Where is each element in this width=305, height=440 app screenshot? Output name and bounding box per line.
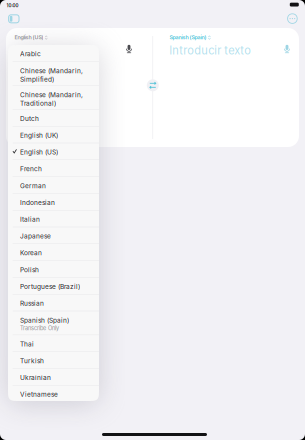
button[interactable]: Chinese (Mandarin, xyxy=(8,86,99,109)
staticText: Korean xyxy=(20,249,42,257)
button[interactable]: Turkish xyxy=(8,352,99,368)
staticText: Ukrainian xyxy=(20,374,51,382)
staticText: Traditional) xyxy=(20,99,56,107)
button[interactable]: Korean xyxy=(8,244,99,260)
staticText: Chinese (Mandarin, xyxy=(20,67,83,75)
button[interactable]: Polish xyxy=(8,261,99,277)
staticText: English (UK) xyxy=(20,131,58,139)
button[interactable]: German xyxy=(8,177,99,193)
staticText: Indonesian xyxy=(20,199,55,206)
staticText: Introducir texto xyxy=(169,44,251,57)
button[interactable]: Dictate English xyxy=(122,41,136,57)
staticText: Polish xyxy=(20,266,39,274)
staticText: Turkish xyxy=(20,357,44,365)
staticText: English (US) xyxy=(20,148,58,156)
staticText: Japanese xyxy=(20,232,51,240)
staticText: Spanish (Spain) xyxy=(170,34,207,41)
button[interactable]: Spanish (Spain) xyxy=(8,311,99,335)
button[interactable]: English (US) xyxy=(14,34,54,40)
staticText: English (US) xyxy=(14,34,43,41)
staticText: Spanish (Spain) xyxy=(20,316,69,324)
button[interactable]: Dictate Spanish xyxy=(280,41,294,57)
button[interactable]: Portuguese (Brazil) xyxy=(8,278,99,294)
staticText: Portuguese (Brazil) xyxy=(20,283,80,290)
staticText: 10:00 xyxy=(6,3,18,8)
button[interactable]: French xyxy=(8,160,99,176)
staticText: Transcribe Only xyxy=(20,325,59,332)
staticText: Simplified) xyxy=(20,75,54,83)
staticText: Enter text xyxy=(14,44,65,57)
staticText: Vietnamese xyxy=(20,390,58,398)
button[interactable]: Swap languages xyxy=(147,79,159,91)
button[interactable]: Ukrainian xyxy=(8,369,99,385)
staticText: Russian xyxy=(20,299,44,307)
button[interactable]: Arabic xyxy=(8,45,99,61)
staticText: Chinese (Mandarin, xyxy=(20,91,83,99)
staticText: French xyxy=(20,165,42,173)
button[interactable]: Chinese (Mandarin, xyxy=(8,62,99,85)
button[interactable]: English (UK) xyxy=(8,126,99,143)
button[interactable]: Russian xyxy=(8,294,99,311)
staticText: Dutch xyxy=(20,115,39,122)
button[interactable]: Spanish (Spain) xyxy=(170,34,215,40)
button[interactable]: English (US) xyxy=(8,143,99,160)
button[interactable]: Indonesian xyxy=(8,194,99,210)
button[interactable]: Thai xyxy=(8,335,99,351)
button[interactable]: Vietnamese xyxy=(8,385,99,402)
staticText: Thai xyxy=(20,340,34,348)
button[interactable]: Japanese xyxy=(8,227,99,244)
staticText: Arabic xyxy=(20,50,41,58)
button[interactable]: Toggle sidebar xyxy=(3,11,25,26)
staticText: German xyxy=(20,182,46,190)
button[interactable]: More options xyxy=(283,11,302,26)
button[interactable]: Dutch xyxy=(8,110,99,126)
staticText: Italian xyxy=(20,215,40,223)
button[interactable]: Italian xyxy=(8,210,99,227)
